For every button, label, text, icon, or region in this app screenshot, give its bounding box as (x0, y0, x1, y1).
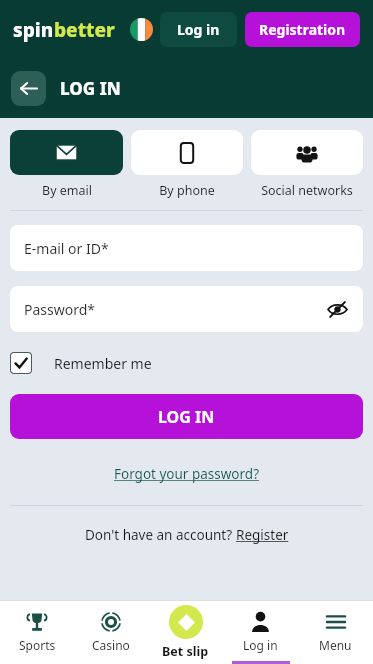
button[interactable]: By phone (131, 130, 243, 199)
staticText: By email (42, 182, 92, 199)
staticText: spin (13, 17, 54, 43)
button[interactable]: Log in (160, 12, 237, 47)
staticText: Bet slip (162, 643, 209, 660)
staticText: LOG IN (158, 406, 215, 428)
button[interactable]: Sports (0, 600, 74, 664)
staticText: LOG IN (60, 77, 121, 100)
staticText: By phone (159, 182, 215, 199)
button[interactable]: Bet slip (148, 600, 223, 664)
staticText: E-mail or ID* (24, 239, 109, 258)
button[interactable]: Show password (325, 297, 349, 321)
button[interactable]: Menu (298, 600, 373, 664)
button[interactable]: Forgot your password? (114, 465, 260, 483)
button[interactable]: By email (10, 130, 123, 199)
staticText: Social networks (261, 182, 353, 199)
button[interactable]: Registration (245, 12, 360, 47)
staticText: Password* (24, 300, 96, 319)
button[interactable]: LOG IN (10, 394, 363, 439)
button[interactable]: Log in (223, 600, 298, 664)
staticText: Log in (243, 637, 278, 653)
staticText: better (54, 17, 115, 43)
button[interactable]: Language Ireland (130, 18, 153, 41)
staticText: Menu (319, 637, 352, 653)
staticText: Register (236, 526, 289, 544)
staticText: Registration (259, 20, 346, 39)
staticText: Don't have an account? (85, 526, 236, 544)
staticText: Log in (177, 20, 220, 39)
staticText: Remember me (54, 354, 152, 373)
button[interactable]: Casino (74, 600, 148, 664)
staticText: Casino (92, 637, 130, 653)
button[interactable]: Social networks (251, 130, 363, 199)
button[interactable]: E-mail or ID* (10, 225, 363, 271)
button[interactable]: Password* (10, 286, 363, 332)
staticText: Sports (19, 637, 56, 653)
button[interactable]: Remember me (10, 352, 363, 374)
button[interactable]: Register (236, 526, 289, 544)
button[interactable]: Back (11, 71, 46, 106)
staticText: Forgot your password? (114, 465, 260, 483)
